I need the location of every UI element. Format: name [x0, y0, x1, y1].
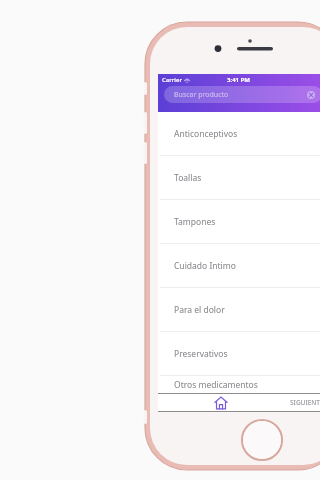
button[interactable]: Anticonceptivos: [158, 112, 320, 156]
staticText: Buscar producto: [174, 90, 229, 100]
button[interactable]: Para el dolor: [158, 288, 320, 332]
button[interactable]: Clear search: [307, 91, 315, 99]
staticText: Para el dolor: [174, 304, 225, 316]
button[interactable]: Tampones: [158, 200, 320, 244]
button[interactable]: Home: [213, 395, 229, 411]
staticText: SIGUIENTE: [290, 398, 320, 407]
staticText: Preservativos: [174, 348, 228, 360]
button[interactable]: Otros medicamentos: [158, 376, 320, 393]
button[interactable]: Cuidado Intimo: [158, 244, 320, 288]
staticText: Tampones: [174, 216, 216, 228]
button[interactable]: SIGUIENTE: [290, 398, 320, 407]
staticText: Cuidado Intimo: [174, 260, 236, 272]
button[interactable]: Toallas: [158, 156, 320, 200]
staticText: Anticonceptivos: [174, 128, 238, 140]
button[interactable]: Preservativos: [158, 332, 320, 376]
staticText: Carrier: [162, 76, 182, 84]
staticText: 3:41 PM: [227, 76, 250, 84]
staticText: Toallas: [174, 172, 202, 184]
staticText: Otros medicamentos: [174, 379, 258, 391]
button[interactable]: Buscar producto: [164, 86, 320, 103]
